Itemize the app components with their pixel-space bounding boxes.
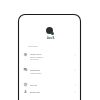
staticText: Manage Devices (30, 70, 41, 72)
button[interactable]: Manage Devices (19, 66, 81, 73)
staticText: ACCOUNT SETTINGS (28, 46, 38, 47)
staticText: Ava B. (47, 36, 55, 40)
staticText: Settings & Privacy (30, 54, 42, 56)
button[interactable]: Take a Tour (19, 82, 81, 87)
staticText: Take a Tour (30, 85, 38, 87)
button[interactable]: Settings & Privacy (19, 50, 81, 59)
button[interactable]: Become Creator (19, 89, 81, 94)
button[interactable]: Profile photo (46, 27, 53, 34)
staticText: Manage your preferences (30, 57, 44, 58)
staticText: 3 devices connected (30, 73, 42, 75)
staticText: and privacy controls (30, 59, 39, 60)
staticText: Become Creator (30, 92, 41, 94)
